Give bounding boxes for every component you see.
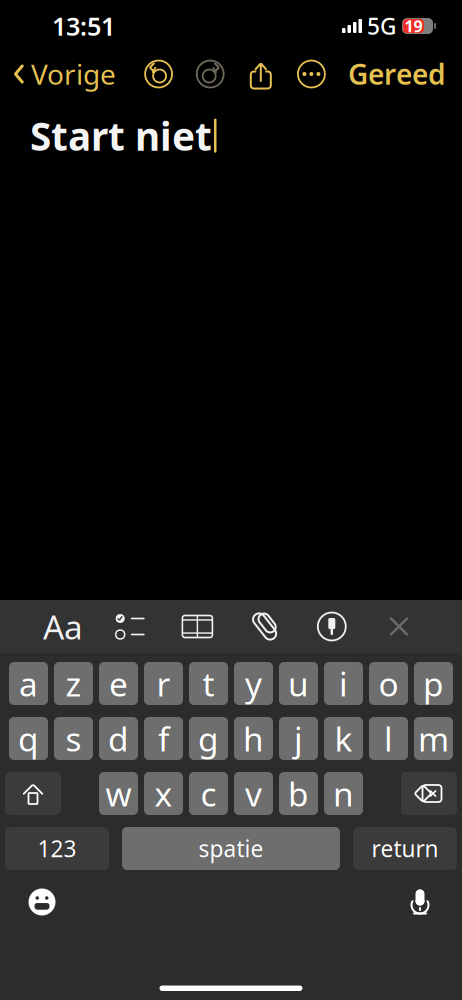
button[interactable]: spatie (122, 827, 340, 870)
staticText: Gereed (348, 55, 446, 93)
button[interactable]: c (189, 772, 228, 815)
button[interactable]: p (414, 662, 453, 705)
staticText: f (158, 716, 169, 761)
staticText: Aa (43, 604, 83, 649)
button[interactable]: y (234, 662, 273, 705)
staticText: r (156, 661, 170, 706)
button[interactable]: return (353, 827, 457, 870)
staticText: 13:51 (52, 9, 115, 43)
button[interactable]: g (189, 717, 228, 760)
button[interactable]: Delete (401, 772, 457, 815)
button[interactable]: a (9, 662, 48, 705)
button[interactable]: e (99, 662, 138, 705)
staticText: Vorige (31, 55, 116, 93)
staticText: h (243, 716, 264, 761)
staticText: o (378, 661, 398, 706)
button[interactable]: Markup (307, 604, 357, 648)
button[interactable]: r (144, 662, 183, 705)
staticText: w (105, 771, 131, 816)
button[interactable]: More (296, 59, 326, 89)
staticText: g (198, 716, 219, 761)
button[interactable]: Close keyboard (374, 604, 424, 648)
button[interactable]: Share (247, 59, 275, 89)
staticText: p (423, 661, 444, 706)
button[interactable]: Checklist (105, 604, 155, 648)
button[interactable]: Attach (240, 604, 290, 648)
button[interactable]: j (279, 717, 318, 760)
staticText: l (384, 716, 393, 761)
button[interactable]: Text formatting (38, 604, 88, 648)
button[interactable]: Vorige (12, 49, 122, 99)
staticText: q (18, 716, 39, 761)
staticText: return (371, 833, 438, 863)
staticText: k (334, 716, 352, 761)
button[interactable]: Table (172, 604, 222, 648)
staticText: t (202, 661, 214, 706)
staticText: u (288, 661, 309, 706)
staticText: n (333, 771, 354, 816)
staticText: e (109, 661, 128, 706)
button[interactable]: Gereed (348, 49, 446, 99)
button[interactable]: 123 (5, 827, 109, 870)
staticText: j (294, 716, 303, 761)
button[interactable]: h (234, 717, 273, 760)
staticText: s (65, 716, 81, 761)
button[interactable]: x (144, 772, 183, 815)
staticText: y (245, 661, 262, 706)
staticText: b (288, 771, 309, 816)
staticText: 5G (367, 11, 396, 41)
staticText: d (108, 716, 129, 761)
button[interactable]: v (234, 772, 273, 815)
staticText: a (19, 661, 38, 706)
staticText: m (418, 716, 449, 761)
button[interactable]: i (324, 662, 363, 705)
button[interactable]: l (369, 717, 408, 760)
button[interactable]: k (324, 717, 363, 760)
staticText: v (245, 771, 262, 816)
button[interactable]: Shift (5, 772, 61, 815)
button[interactable]: u (279, 662, 318, 705)
staticText: x (154, 771, 172, 816)
staticText: 123 (37, 833, 76, 863)
button[interactable]: Dictate (396, 880, 444, 924)
button[interactable]: n (324, 772, 363, 815)
staticText: spatie (198, 833, 263, 863)
button[interactable]: m (414, 717, 453, 760)
staticText: i (339, 661, 348, 706)
staticText: 19 (404, 15, 422, 37)
button[interactable]: d (99, 717, 138, 760)
button[interactable]: Emoji (18, 880, 66, 924)
button[interactable]: Undo (144, 59, 174, 89)
staticText: c (200, 771, 216, 816)
staticText: z (65, 661, 81, 706)
button[interactable]: f (144, 717, 183, 760)
button[interactable]: Redo (195, 59, 225, 89)
button[interactable]: t (189, 662, 228, 705)
button[interactable]: s (54, 717, 93, 760)
button[interactable]: q (9, 717, 48, 760)
button[interactable]: b (279, 772, 318, 815)
button[interactable]: z (54, 662, 93, 705)
staticText: Start niet (30, 110, 212, 161)
button[interactable]: o (369, 662, 408, 705)
button[interactable]: w (99, 772, 138, 815)
